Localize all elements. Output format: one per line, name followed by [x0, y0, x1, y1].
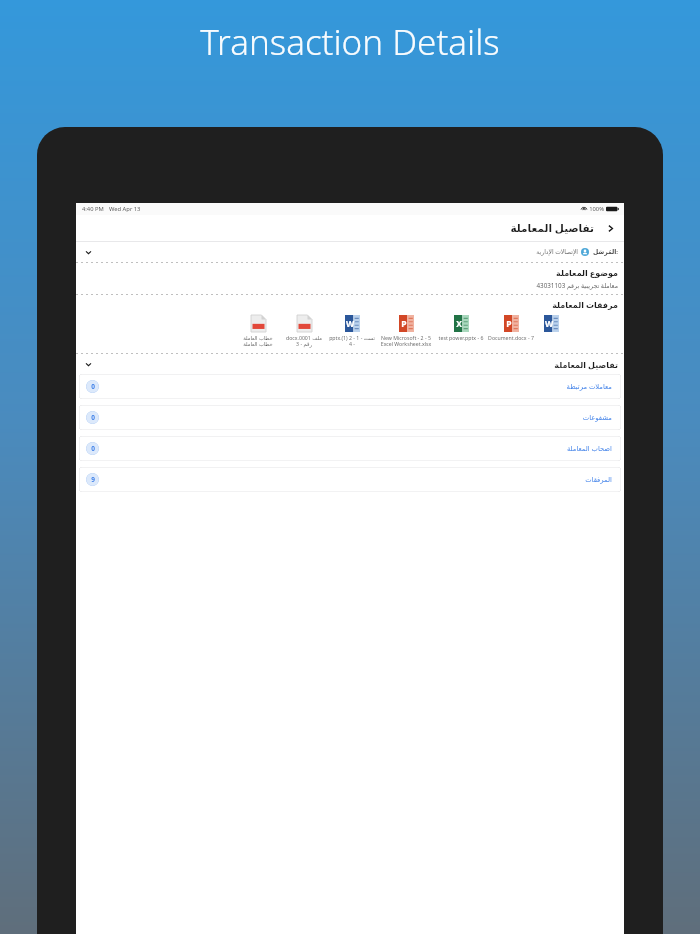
staticText: docx.0001 ملف رقم - 3 — [282, 334, 326, 348]
staticText: Transaction Details — [0, 18, 700, 66]
staticText: 0 — [91, 382, 95, 391]
staticText: Wed Apr 13 — [109, 205, 141, 213]
staticText: مرفقات المعاملة — [76, 299, 618, 310]
staticText: X — [455, 318, 463, 330]
staticText: مشفوعات — [582, 414, 612, 422]
button[interactable]: Back — [602, 220, 618, 236]
staticText: المرفقات — [585, 476, 612, 484]
button[interactable]: Expand sender — [82, 246, 94, 258]
staticText: معاملة تجريبية برقم 43031103 — [76, 281, 618, 290]
button[interactable]: 0 — [79, 374, 621, 399]
button[interactable]: docx.0001 ملف رقم - 3 — [282, 315, 326, 348]
staticText: المُرسَل: — [592, 248, 618, 256]
button[interactable]: W — [536, 315, 566, 341]
staticText: تفاصيل المعاملة — [554, 359, 618, 370]
staticText: pptx.(1) تست - 1 - 2 - 4 — [328, 334, 376, 348]
staticText: تفاصيل المعاملة — [510, 221, 594, 235]
button[interactable]: P — [378, 315, 434, 348]
staticText: معاملات مرتبطة — [566, 382, 612, 391]
staticText: خطاب العاملة خطاب العاملة — [236, 334, 280, 348]
staticText: P — [400, 318, 408, 330]
staticText: test power.pptx - 6 — [436, 334, 486, 341]
button[interactable]: خطاب العاملة خطاب العاملة — [236, 315, 280, 348]
staticText: W — [346, 318, 354, 330]
staticText: Document.docx - 7 — [488, 334, 534, 341]
staticText: 0 — [91, 413, 95, 422]
staticText: 4:40 PM — [82, 205, 104, 213]
button[interactable]: W — [328, 315, 376, 348]
button[interactable]: P — [488, 315, 534, 341]
button[interactable]: X — [436, 315, 486, 341]
staticText: New Microsoft - 2 - 5 Excel Worksheet.xl… — [378, 334, 434, 348]
staticText: موضوع المعاملة — [76, 267, 618, 278]
button[interactable]: 9 — [79, 467, 621, 492]
staticText: W — [545, 318, 553, 330]
staticText: 100% — [589, 205, 604, 213]
button[interactable]: 0 — [79, 405, 621, 430]
staticText: 9 — [91, 475, 95, 484]
staticText: 0 — [91, 444, 95, 453]
button[interactable]: 0 — [79, 436, 621, 461]
staticText: الإتصالات الإدارية — [536, 248, 578, 256]
staticText: P — [505, 318, 513, 330]
staticText: اصحاب المعاملة — [566, 444, 612, 453]
button[interactable]: Expand details — [82, 358, 94, 370]
